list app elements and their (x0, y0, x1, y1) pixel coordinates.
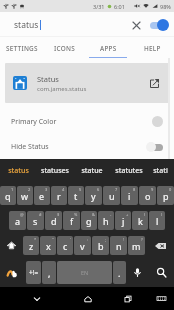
staticText: statutes (115, 166, 143, 176)
button[interactable]: stati (147, 159, 174, 183)
button[interactable]: l (149, 211, 165, 230)
button[interactable]: APPS (86, 37, 130, 58)
button[interactable]: e (34, 186, 50, 205)
staticText: 9 (151, 187, 154, 192)
button[interactable]: a (9, 211, 26, 230)
staticText: v (80, 240, 85, 252)
staticText: * (34, 237, 37, 242)
staticText: 4 (62, 187, 65, 192)
staticText: 8 (133, 187, 136, 192)
staticText: g (86, 215, 92, 227)
staticText: r (57, 190, 61, 202)
staticText: ( (144, 212, 146, 217)
button[interactable]: Enable service (148, 17, 168, 33)
staticText: . (118, 267, 121, 279)
button[interactable]: Hide keyboard (150, 287, 172, 310)
staticText: HELP (144, 44, 161, 53)
staticText: o (145, 190, 151, 202)
button[interactable]: , (42, 261, 56, 284)
button[interactable]: u (103, 186, 120, 205)
button[interactable]: Shift (0, 236, 22, 255)
button[interactable]: Back (26, 287, 48, 310)
staticText: x (46, 240, 51, 252)
staticText: status (14, 19, 39, 31)
staticText: " (52, 237, 54, 242)
staticText: ' (70, 237, 71, 242)
button[interactable]: n (110, 236, 127, 255)
button[interactable]: Backspace (146, 236, 174, 255)
button[interactable]: w (17, 186, 33, 205)
button[interactable]: +!= (26, 261, 41, 284)
staticText: Hide Status (11, 142, 49, 152)
button[interactable]: . (113, 261, 126, 284)
button[interactable]: b (92, 236, 109, 255)
button[interactable]: SETTINGS (0, 37, 43, 58)
staticText: h (103, 215, 109, 227)
button[interactable]: m (128, 236, 145, 255)
button[interactable]: status (0, 159, 36, 183)
staticText: d (51, 215, 57, 227)
button[interactable]: i (121, 186, 138, 205)
button[interactable]: c (57, 236, 73, 255)
button[interactable]: HELP (130, 37, 174, 58)
staticText: 3 (45, 187, 48, 192)
button[interactable]: statutes (110, 159, 147, 183)
staticText: i (128, 190, 131, 202)
button[interactable]: v (74, 236, 91, 255)
button[interactable]: Recent apps (117, 287, 139, 310)
staticText: b (98, 240, 104, 252)
button[interactable]: ICONS (43, 37, 86, 58)
button[interactable]: statue (73, 159, 110, 183)
button[interactable]: Open app settings (145, 74, 163, 92)
button[interactable]: y (85, 186, 102, 205)
staticText: 6:01 (114, 3, 125, 10)
button[interactable]: g (81, 211, 97, 230)
staticText: APPS (100, 44, 117, 53)
staticText: 7 (115, 187, 118, 192)
button[interactable]: Clear search (128, 17, 144, 33)
staticText: ICONS (54, 44, 75, 53)
staticText: com.james.status (37, 85, 87, 93)
button[interactable]: s (27, 211, 44, 230)
staticText: n (116, 240, 122, 252)
staticText: stati (153, 166, 168, 176)
button[interactable]: q (0, 186, 16, 205)
staticText: & (92, 212, 95, 217)
button[interactable]: x (40, 236, 56, 255)
button[interactable]: r (51, 186, 67, 205)
button[interactable]: Status (5, 63, 169, 103)
staticText: : (87, 237, 89, 242)
staticText: c (63, 240, 68, 252)
button[interactable]: h (98, 211, 114, 230)
staticText: statue (81, 166, 103, 176)
button[interactable]: o (139, 186, 156, 205)
button[interactable]: f (63, 211, 80, 230)
staticText: s (33, 215, 38, 227)
staticText: 2 (28, 187, 31, 192)
button[interactable]: p (157, 186, 174, 205)
button[interactable]: Hide Status (0, 134, 174, 159)
button[interactable]: Home (77, 287, 99, 310)
staticText: k (138, 215, 143, 227)
staticText: ; (105, 237, 107, 242)
staticText: 1 (11, 187, 14, 192)
button[interactable]: k (132, 211, 148, 230)
button[interactable]: statuses (36, 159, 73, 183)
staticText: status (8, 166, 29, 176)
staticText: EN (81, 269, 89, 276)
button[interactable]: j (115, 211, 131, 230)
button[interactable]: Space (57, 261, 112, 284)
staticText: 0 (169, 187, 172, 192)
button[interactable]: z (23, 236, 39, 255)
staticText: e (39, 190, 45, 202)
button[interactable]: t (68, 186, 84, 205)
button[interactable]: Emoji (0, 261, 25, 284)
button[interactable]: Voice input (127, 261, 147, 284)
button[interactable]: Primary Color (0, 109, 174, 134)
staticText: m (132, 240, 141, 252)
staticText: % (74, 212, 78, 217)
staticText: l (156, 215, 159, 227)
button[interactable]: d (45, 211, 62, 230)
button[interactable]: Search (148, 261, 174, 284)
staticText: u (109, 190, 115, 202)
